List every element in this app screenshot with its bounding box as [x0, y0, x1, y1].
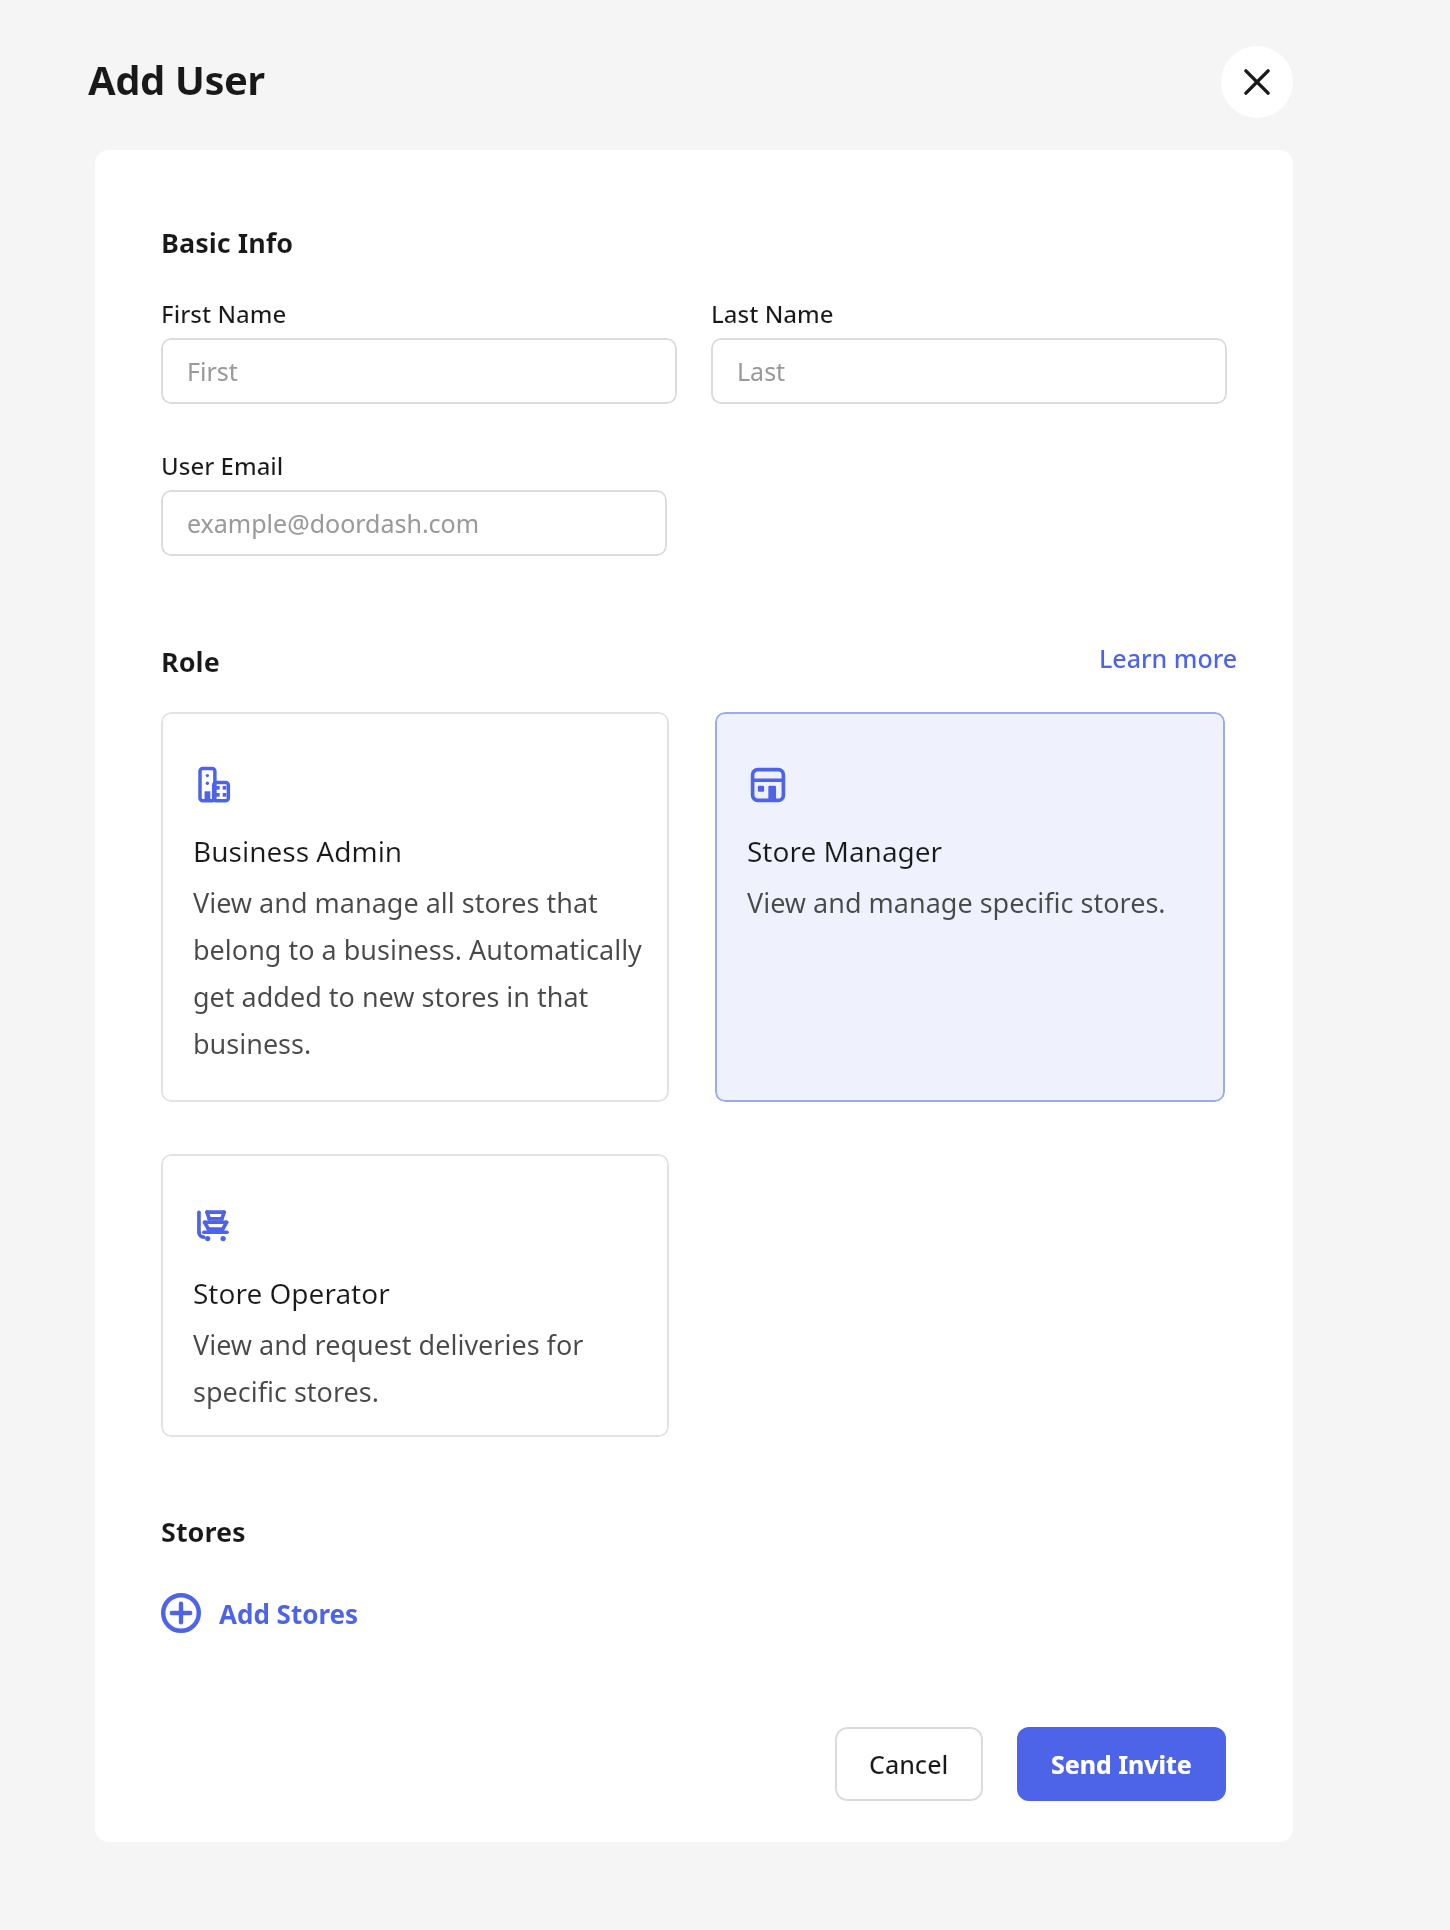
staticText: Business Admin: [193, 832, 403, 870]
staticText: View and request deliveries for specific…: [193, 1326, 643, 1410]
staticText: example@doordash.com: [187, 506, 480, 540]
button[interactable]: Send Invite: [1017, 1727, 1226, 1801]
staticText: Stores: [161, 1513, 246, 1550]
button[interactable]: Store Operator: [161, 1154, 669, 1437]
staticText: Basic Info: [161, 224, 294, 261]
button[interactable]: Cancel: [835, 1727, 983, 1801]
staticText: Last: [737, 354, 786, 388]
button[interactable]: Add Stores: [155, 1587, 365, 1639]
staticText: First: [187, 354, 238, 388]
button[interactable]: Learn more: [1095, 637, 1242, 679]
staticText: Last Name: [711, 297, 834, 330]
button[interactable]: Close: [1221, 46, 1293, 118]
button[interactable]: Store Manager: [715, 712, 1225, 1102]
staticText: View and manage all stores that belong t…: [193, 884, 643, 1062]
staticText: First Name: [161, 297, 287, 330]
button[interactable]: example@doordash.com: [161, 490, 667, 556]
staticText: Role: [161, 643, 220, 680]
staticText: Store Manager: [747, 832, 943, 870]
staticText: Add User: [88, 52, 265, 106]
staticText: Add Stores: [219, 1596, 359, 1631]
staticText: Learn more: [1099, 641, 1238, 675]
button[interactable]: Business Admin: [161, 712, 669, 1102]
staticText: Cancel: [869, 1747, 949, 1781]
staticText: Send Invite: [1051, 1747, 1192, 1781]
staticText: User Email: [161, 449, 284, 482]
button[interactable]: First: [161, 338, 677, 404]
button[interactable]: Last: [711, 338, 1227, 404]
staticText: View and manage specific stores.: [747, 884, 1166, 921]
staticText: Store Operator: [193, 1274, 390, 1312]
